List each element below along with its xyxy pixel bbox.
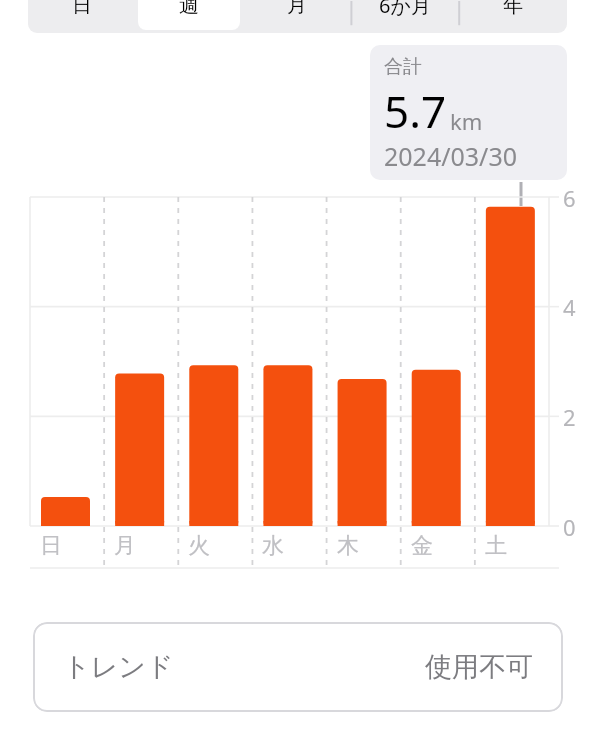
button[interactable]: 月 xyxy=(246,0,348,30)
staticText: 土 xyxy=(485,532,507,560)
button[interactable]: 合計 xyxy=(370,45,567,180)
staticText: 6か月 xyxy=(379,0,431,19)
staticText: トレンド xyxy=(63,650,174,684)
staticText: 週 xyxy=(179,0,199,18)
staticText: 日 xyxy=(40,532,62,560)
button[interactable]: 年 xyxy=(462,0,564,30)
button[interactable]: 週 xyxy=(138,0,240,30)
staticText: 0 xyxy=(563,512,576,542)
staticText: 6 xyxy=(563,183,576,213)
staticText: 日 xyxy=(72,0,92,18)
staticText: 水 xyxy=(262,532,284,560)
staticText: 木 xyxy=(337,532,359,560)
staticText: 使用不可 xyxy=(425,650,533,684)
button[interactable]: 日 xyxy=(31,0,132,30)
staticText: 月 xyxy=(287,0,307,18)
staticText: 5.7 xyxy=(384,81,447,141)
staticText: 年 xyxy=(503,0,523,18)
staticText: 火 xyxy=(188,532,210,560)
button[interactable]: トレンド xyxy=(33,622,563,712)
staticText: 合計 xyxy=(384,55,422,79)
staticText: km xyxy=(450,106,483,136)
staticText: 4 xyxy=(563,292,576,322)
staticText: 2 xyxy=(563,402,576,432)
staticText: 金 xyxy=(411,532,433,560)
staticText: 2024/03/30 xyxy=(384,139,518,173)
staticText: 月 xyxy=(114,532,136,560)
button[interactable]: 6か月 xyxy=(354,0,456,30)
